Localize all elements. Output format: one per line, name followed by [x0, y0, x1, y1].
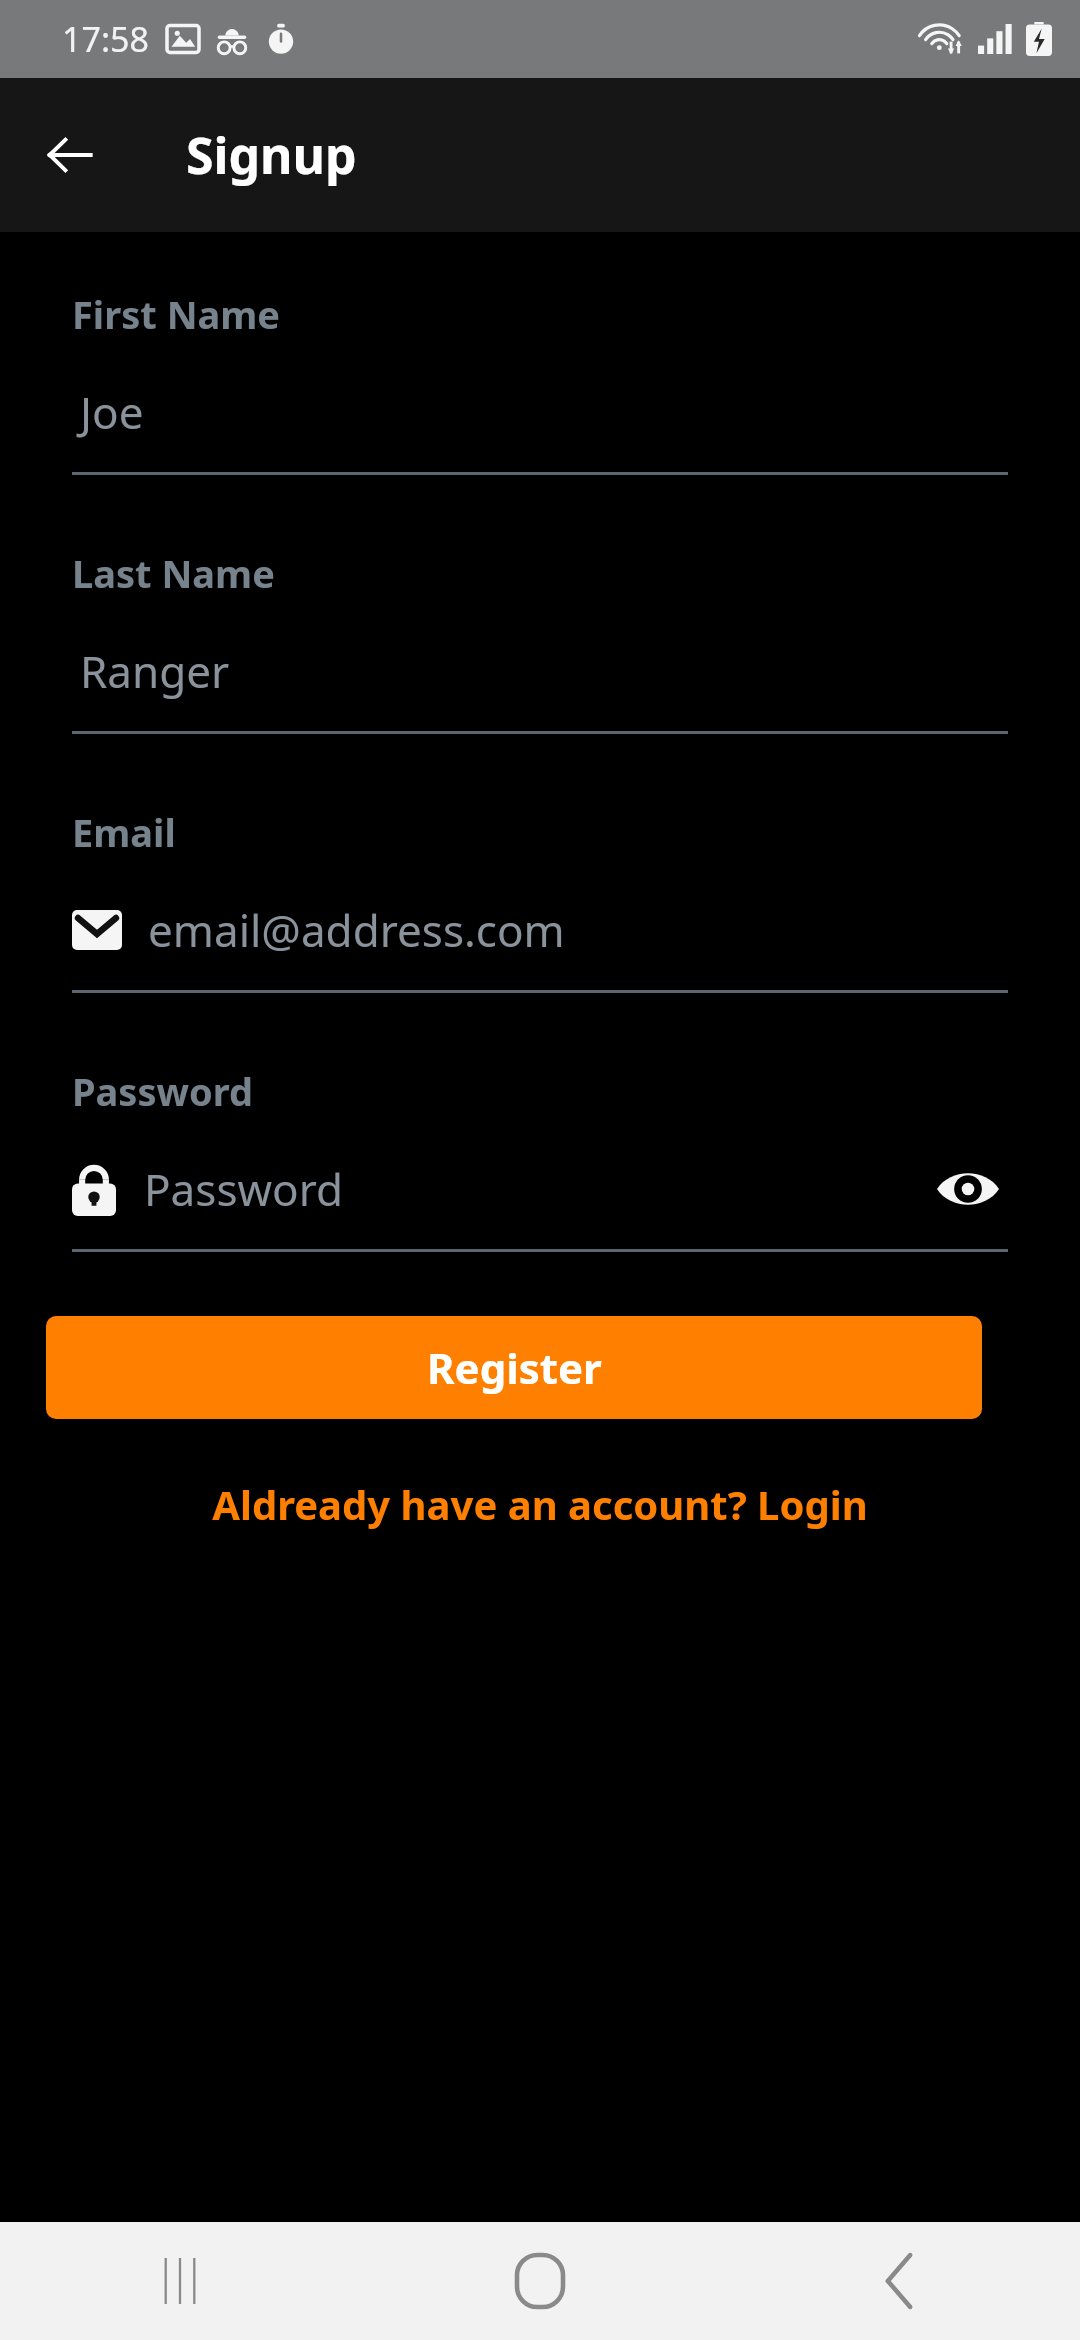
staticText: Last Name [72, 547, 275, 599]
staticText: 17:58 [62, 16, 149, 62]
staticText: Password [72, 1065, 254, 1117]
button[interactable]: Aldready have an account? Login [72, 1477, 1008, 1531]
staticText: Joe [80, 382, 1008, 442]
staticText: Email [72, 806, 176, 858]
staticText: Register [427, 1339, 602, 1396]
button[interactable]: Joe [72, 376, 1008, 448]
button[interactable]: Back [720, 2222, 1080, 2340]
staticText: First Name [72, 288, 281, 340]
staticText: Signup [186, 121, 357, 189]
button[interactable]: email@address.com [72, 894, 1008, 966]
button[interactable]: Recents [0, 2222, 360, 2340]
button[interactable]: Back [28, 113, 112, 197]
staticText: Aldready have an account? Login [212, 1477, 868, 1531]
button[interactable]: Ranger [72, 635, 1008, 707]
staticText: Password [144, 1159, 928, 1219]
button[interactable]: Register [46, 1316, 982, 1419]
staticText: email@address.com [148, 900, 1008, 960]
button[interactable]: Show password [928, 1153, 1008, 1225]
button[interactable]: Home [360, 2222, 720, 2340]
staticText: Ranger [80, 641, 1008, 701]
button[interactable]: Password [72, 1153, 1008, 1225]
